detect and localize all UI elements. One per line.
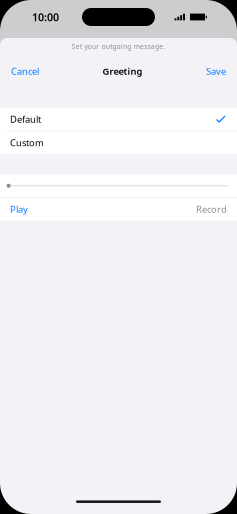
staticText: Cancel [11,65,39,77]
button[interactable]: Play [10,203,28,215]
button[interactable]: Custom [0,131,237,154]
staticText: Play [10,203,28,215]
staticText: Default [10,113,41,125]
staticText: Set your outgoing message. [71,42,165,51]
staticText: Record [196,203,227,215]
button[interactable]: Save [206,62,226,80]
staticText: Save [206,65,226,77]
staticText: 10:00 [32,10,59,24]
staticText: Custom [10,137,44,149]
button[interactable]: Cancel [11,62,39,80]
staticText: Greeting [102,65,142,77]
button[interactable]: Default [0,108,237,131]
button[interactable]: Record [196,203,227,215]
